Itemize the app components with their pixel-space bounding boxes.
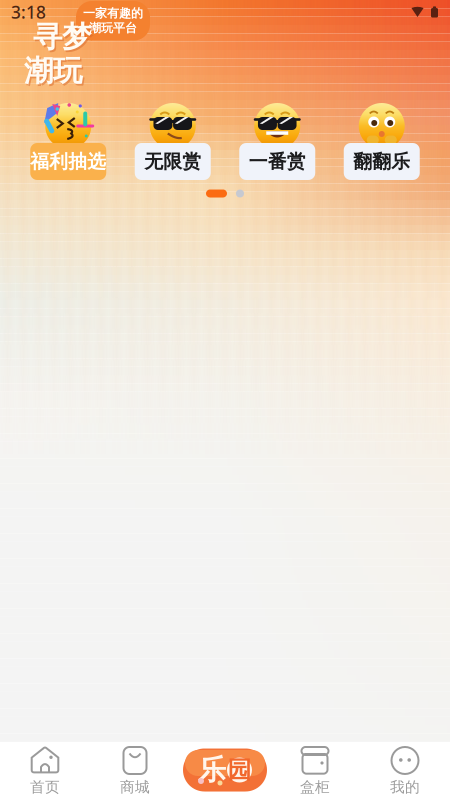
staticText: 潮玩 xyxy=(24,53,82,89)
staticText: 福利抽选 xyxy=(30,150,106,173)
staticText: 无限赏 xyxy=(144,150,201,173)
staticText: 3:18 xyxy=(11,0,46,23)
staticText: 一家有趣的 xyxy=(83,6,143,21)
staticText: 潮玩平台 xyxy=(89,21,137,35)
staticText: 寻梦 xyxy=(34,21,92,57)
button[interactable]: 无限赏 xyxy=(120,110,225,180)
staticText: 我的 xyxy=(390,778,420,796)
button[interactable]: 首页 xyxy=(0,742,90,800)
staticText: 寻梦 xyxy=(33,19,91,55)
button[interactable]: 商城 xyxy=(90,742,180,800)
button[interactable]: 翻翻乐 xyxy=(329,110,434,180)
staticText: 商城 xyxy=(120,778,150,796)
staticText: 一番赏 xyxy=(249,150,306,173)
staticText: 潮玩 xyxy=(25,55,83,91)
staticText: 乐 xyxy=(198,753,226,787)
staticText: 园 xyxy=(227,755,251,785)
staticText: 盒柜 xyxy=(300,778,330,796)
button[interactable]: 福利抽选 xyxy=(16,110,120,180)
button[interactable]: 我的 xyxy=(360,742,450,800)
staticText: 首页 xyxy=(30,778,60,796)
button[interactable]: 盒柜 xyxy=(270,742,360,800)
button[interactable]: 一番赏 xyxy=(225,110,329,180)
button[interactable]: 乐园 xyxy=(183,748,267,791)
staticText: 翻翻乐 xyxy=(353,150,410,173)
